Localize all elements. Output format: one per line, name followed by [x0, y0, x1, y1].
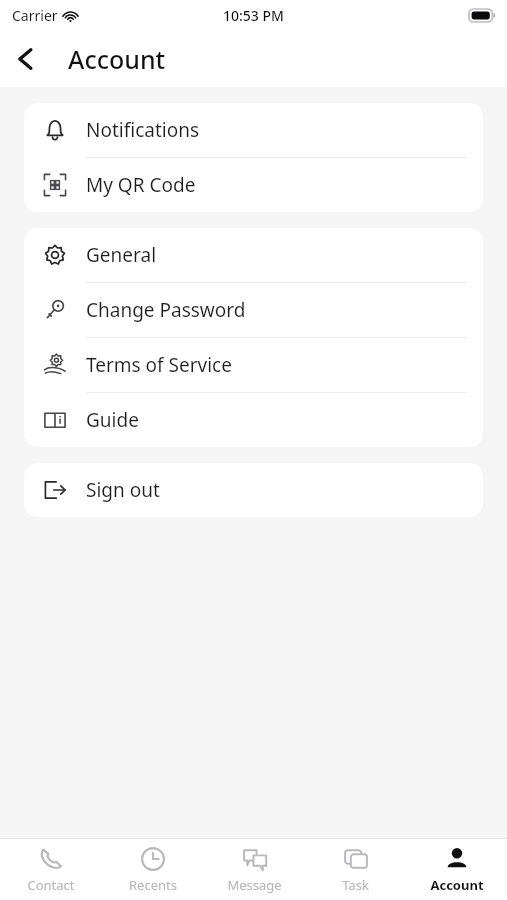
staticText: Notifications [86, 117, 200, 143]
staticText: Terms of Service [86, 352, 232, 378]
button[interactable]: Contact [0, 839, 102, 900]
button[interactable]: Recents [102, 839, 204, 900]
button[interactable]: General [24, 228, 483, 283]
button[interactable]: My QR Code [24, 158, 483, 212]
button[interactable]: Notifications [24, 103, 483, 158]
staticText: Account [68, 42, 166, 76]
staticText: Message [227, 876, 282, 894]
button[interactable]: Back [0, 33, 52, 85]
button[interactable]: Guide [24, 393, 483, 447]
staticText: Contact [27, 876, 75, 894]
staticText: Change Password [86, 297, 246, 323]
button[interactable]: Task [305, 839, 406, 900]
staticText: Carrier [12, 6, 58, 25]
button[interactable]: Change Password [24, 283, 483, 338]
staticText: General [86, 242, 157, 268]
staticText: Task [342, 876, 369, 894]
staticText: Guide [86, 407, 139, 433]
staticText: 10:53 PM [223, 6, 284, 25]
button[interactable]: Account [406, 839, 507, 900]
staticText: Recents [129, 876, 177, 894]
button[interactable]: Message [204, 839, 305, 900]
staticText: Sign out [86, 477, 160, 503]
staticText: My QR Code [86, 172, 196, 198]
button[interactable]: Sign out [24, 463, 483, 517]
button[interactable]: Terms of Service [24, 338, 483, 393]
staticText: Account [430, 876, 484, 894]
